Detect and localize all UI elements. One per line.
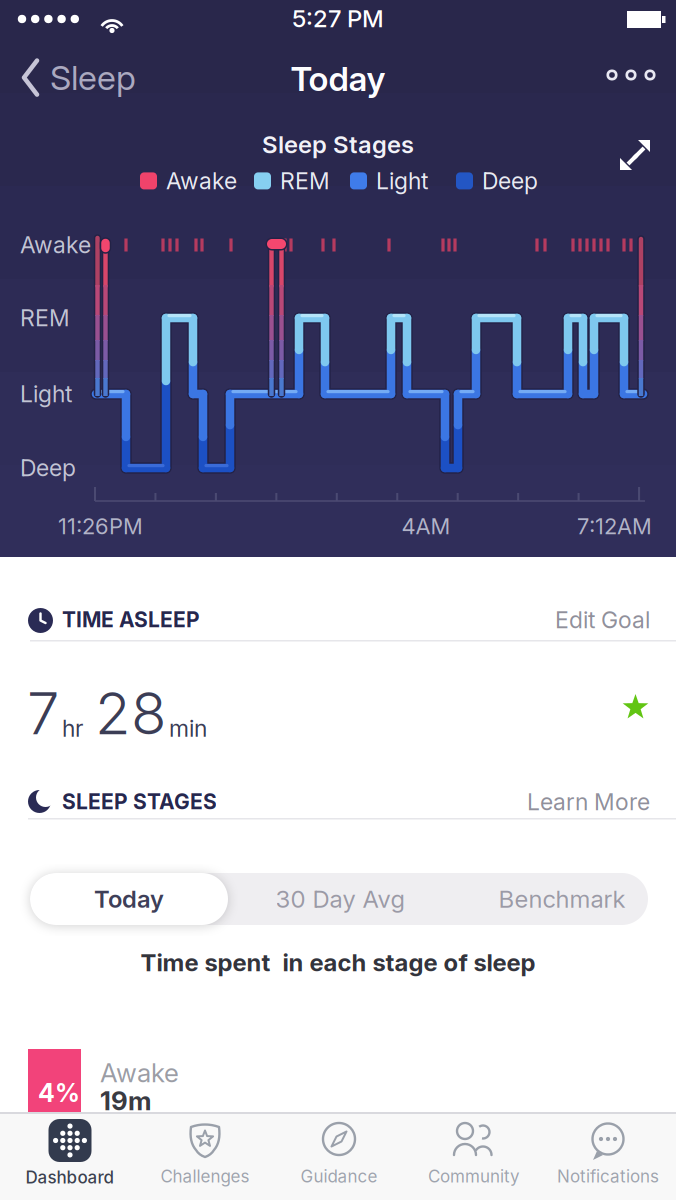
button[interactable]: Today bbox=[30, 873, 228, 925]
staticText: Light bbox=[376, 167, 428, 195]
button[interactable]: Sleep bbox=[22, 57, 136, 98]
staticText: 7 bbox=[27, 678, 59, 748]
staticText: Challenges bbox=[160, 1166, 249, 1187]
staticText: 4AM bbox=[401, 513, 450, 540]
staticText: Edit Goal bbox=[555, 606, 650, 634]
button[interactable]: 30 Day Avg bbox=[235, 873, 445, 925]
staticText: Today bbox=[94, 884, 164, 913]
button[interactable]: Challenges bbox=[138, 1120, 272, 1187]
staticText: Deep bbox=[482, 167, 538, 195]
staticText: Light bbox=[20, 380, 72, 408]
staticText: hr bbox=[62, 714, 83, 742]
staticText: Sleep bbox=[50, 57, 136, 98]
staticText: 4% bbox=[38, 1078, 80, 1108]
button[interactable]: Guidance bbox=[272, 1120, 406, 1187]
staticText: 30 Day Avg bbox=[275, 884, 404, 913]
staticText: Dashboard bbox=[25, 1167, 114, 1188]
staticText: 28 bbox=[95, 678, 166, 748]
button[interactable]: Benchmark bbox=[462, 873, 662, 925]
staticText: SLEEP STAGES bbox=[62, 789, 217, 814]
staticText: 7:12AM bbox=[577, 513, 652, 540]
staticText: min bbox=[169, 714, 207, 742]
staticText: Deep bbox=[20, 454, 76, 482]
staticText: 11:26PM bbox=[58, 513, 143, 540]
staticText: Today bbox=[290, 58, 385, 99]
staticText: Time spent in each stage of sleep bbox=[140, 948, 535, 977]
staticText: Community bbox=[428, 1166, 520, 1187]
staticText: Learn More bbox=[527, 788, 650, 816]
button[interactable]: Notifications bbox=[541, 1120, 675, 1187]
staticText: REM bbox=[20, 304, 70, 332]
staticText: 19m bbox=[100, 1085, 151, 1116]
staticText: 5:27 PM bbox=[292, 4, 384, 33]
staticText: Guidance bbox=[300, 1166, 377, 1187]
button[interactable]: Edit Goal bbox=[555, 606, 650, 634]
staticText: Benchmark bbox=[498, 884, 625, 913]
staticText: REM bbox=[280, 167, 330, 195]
button[interactable] bbox=[606, 69, 656, 81]
button[interactable]: Community bbox=[407, 1120, 541, 1187]
staticText: Awake bbox=[100, 1057, 179, 1088]
button[interactable]: Learn More bbox=[527, 788, 650, 816]
button[interactable] bbox=[620, 140, 650, 170]
button[interactable]: Dashboard bbox=[3, 1119, 137, 1188]
staticText: Awake bbox=[166, 167, 237, 195]
staticText: Sleep Stages bbox=[262, 130, 414, 159]
staticText: Awake bbox=[20, 231, 91, 259]
staticText: Notifications bbox=[557, 1166, 659, 1187]
staticText: TIME ASLEEP bbox=[62, 607, 200, 632]
